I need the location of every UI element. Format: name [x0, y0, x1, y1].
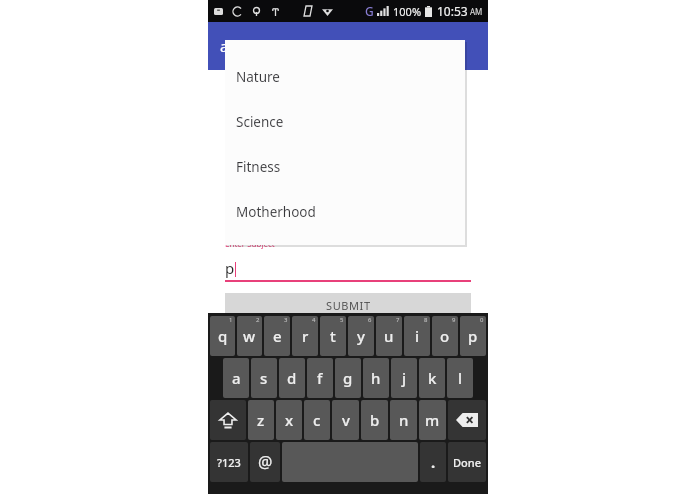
staticText: Nature: [236, 68, 280, 86]
button[interactable]: g: [335, 358, 361, 398]
button[interactable]: o: [432, 316, 458, 356]
button[interactable]: q: [210, 316, 235, 356]
staticText: Done: [453, 455, 481, 470]
staticText: t: [330, 326, 336, 346]
staticText: Fitness: [236, 158, 281, 176]
button[interactable]: e: [264, 316, 290, 356]
button[interactable]: n: [390, 400, 417, 440]
staticText: ?123: [217, 455, 241, 470]
button[interactable]: w: [237, 316, 262, 356]
button[interactable]: d: [279, 358, 305, 398]
staticText: G: [365, 3, 374, 19]
staticText: Science: [236, 113, 284, 131]
staticText: m: [425, 410, 440, 430]
button[interactable]: Shift: [210, 400, 246, 440]
staticText: Enter Subject: [225, 238, 275, 249]
staticText: 10:53: [437, 3, 468, 19]
staticText: h: [371, 368, 381, 388]
button[interactable]: SUBMIT: [225, 293, 471, 318]
button[interactable]: i: [404, 316, 430, 356]
button[interactable]: h: [363, 358, 389, 398]
staticText: 1: [229, 316, 233, 324]
button[interactable]: Nature: [225, 54, 465, 99]
staticText: b: [370, 410, 380, 430]
staticText: c: [313, 410, 321, 430]
button[interactable]: j: [391, 358, 417, 398]
button[interactable]: v: [332, 400, 359, 440]
button[interactable]: s: [251, 358, 277, 398]
staticText: p: [468, 326, 478, 346]
button[interactable]: x: [276, 400, 302, 440]
button[interactable]: u: [376, 316, 402, 356]
staticText: i: [415, 326, 420, 346]
staticText: z: [257, 410, 265, 430]
button[interactable]: y: [348, 316, 374, 356]
staticText: o: [440, 326, 450, 346]
staticText: 7: [396, 316, 400, 324]
button[interactable]: z: [248, 400, 274, 440]
button[interactable]: b: [361, 400, 388, 440]
staticText: r: [302, 326, 309, 346]
button[interactable]: c: [304, 400, 330, 440]
staticText: n: [399, 410, 409, 430]
staticText: 8: [424, 316, 428, 324]
staticText: v: [342, 410, 350, 430]
button[interactable]: ?123: [210, 442, 248, 482]
button[interactable]: r: [292, 316, 318, 356]
staticText: x: [285, 410, 294, 430]
staticText: 5: [340, 316, 344, 324]
button[interactable]: @: [250, 442, 280, 482]
button[interactable]: f: [307, 358, 333, 398]
button[interactable]: a: [223, 358, 249, 398]
button[interactable]: p: [225, 256, 471, 282]
staticText: 0: [480, 316, 484, 324]
staticText: u: [384, 326, 394, 346]
staticText: s: [260, 368, 268, 388]
staticText: a: [232, 368, 241, 388]
staticText: g: [343, 368, 353, 388]
staticText: p: [225, 258, 235, 278]
button[interactable]: k: [419, 358, 445, 398]
staticText: 3: [284, 316, 288, 324]
staticText: q: [218, 326, 228, 346]
staticText: 6: [368, 316, 372, 324]
button[interactable]: Done: [448, 442, 486, 482]
staticText: j: [402, 368, 407, 388]
staticText: d: [287, 368, 297, 388]
staticText: 9: [452, 316, 456, 324]
staticText: SUBMIT: [326, 298, 371, 313]
button[interactable]: Science: [225, 99, 465, 144]
button[interactable]: t: [320, 316, 346, 356]
staticText: f: [317, 368, 323, 388]
button[interactable]: p: [460, 316, 486, 356]
staticText: w: [243, 326, 256, 346]
staticText: k: [428, 368, 437, 388]
staticText: AM: [470, 6, 483, 17]
staticText: 2: [256, 316, 260, 324]
button[interactable]: Motherhood: [225, 189, 465, 234]
staticText: y: [357, 326, 365, 346]
button[interactable]: l: [447, 358, 473, 398]
staticText: 4: [312, 316, 316, 324]
staticText: Motherhood: [236, 203, 316, 221]
button[interactable]: Fitness: [225, 144, 465, 189]
staticText: 100%: [393, 4, 422, 19]
button[interactable]: .: [420, 442, 446, 482]
staticText: .: [431, 452, 436, 472]
staticText: e: [273, 326, 282, 346]
button[interactable]: Backspace: [448, 400, 486, 440]
staticText: l: [458, 368, 463, 388]
button[interactable]: m: [419, 400, 446, 440]
staticText: a: [220, 36, 229, 56]
staticText: @: [258, 451, 273, 473]
